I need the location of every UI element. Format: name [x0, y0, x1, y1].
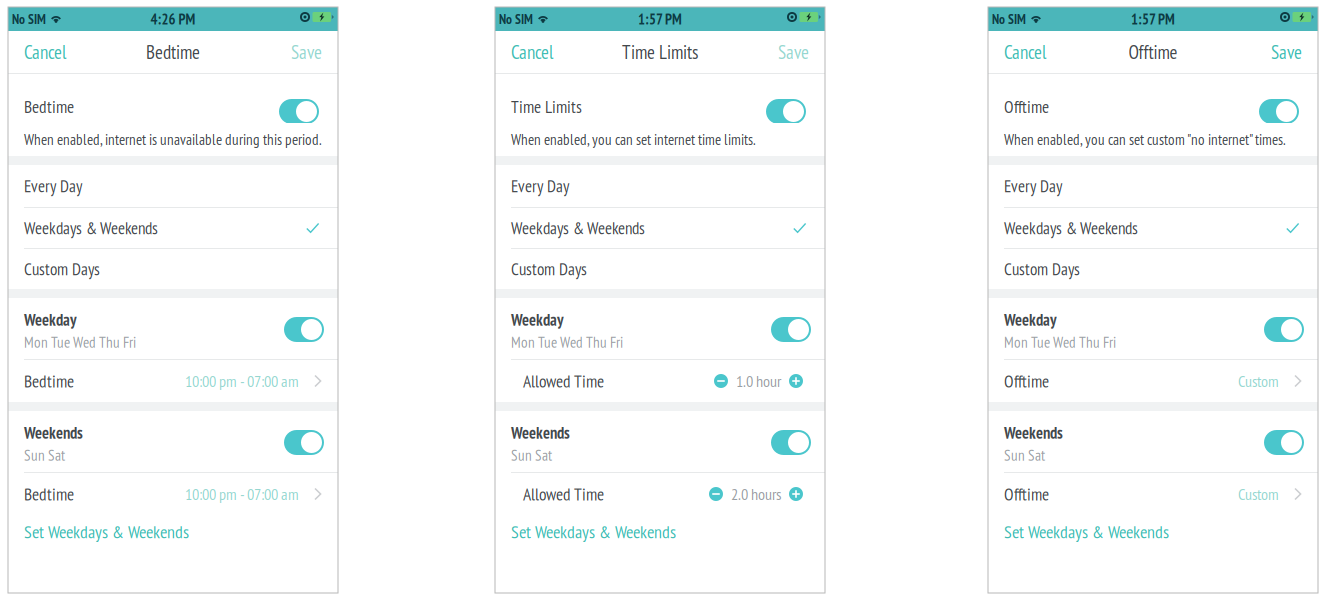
- staticText: When enabled, you can set internet time …: [511, 130, 756, 149]
- staticText: Allowed Time: [523, 370, 604, 392]
- button[interactable]: Offtime: [1259, 86, 1299, 111]
- staticText: Bedtime: [24, 370, 74, 392]
- staticText: 1.0 hour: [736, 370, 781, 391]
- staticText: 10:00 pm - 07:00 am: [185, 370, 299, 391]
- button[interactable]: Time Limits: [766, 86, 806, 111]
- staticText: Custom: [1238, 370, 1279, 391]
- staticText: No SIM: [499, 10, 533, 28]
- button[interactable]: Every Day: [988, 165, 1318, 207]
- button[interactable]: Custom Days: [988, 249, 1318, 289]
- button[interactable]: Save: [764, 29, 825, 75]
- staticText: Bedtime: [24, 483, 74, 505]
- button[interactable]: Weekdays & Weekends: [988, 208, 1318, 248]
- staticText: Offtime: [1128, 40, 1177, 64]
- staticText: Time Limits: [622, 40, 698, 64]
- staticText: Sun Sat: [511, 445, 552, 465]
- staticText: Custom Days: [1004, 258, 1080, 280]
- staticText: Weekday: [511, 309, 564, 330]
- staticText: Bedtime: [146, 40, 200, 64]
- staticText: Sun Sat: [24, 445, 65, 465]
- staticText: Weekends: [1004, 422, 1063, 443]
- button[interactable]: Bedtime: [8, 473, 338, 515]
- staticText: Weekends: [511, 422, 570, 443]
- staticText: Weekdays & Weekends: [1004, 217, 1138, 239]
- button[interactable]: Decrease allowed time: [714, 374, 728, 388]
- staticText: No SIM: [12, 10, 46, 28]
- button[interactable]: Save: [1257, 29, 1318, 75]
- button[interactable]: Weekday: [1264, 316, 1304, 341]
- staticText: 2.0 hours: [731, 483, 781, 504]
- button[interactable]: Custom Days: [495, 249, 825, 289]
- button[interactable]: Save: [277, 29, 338, 75]
- staticText: Every Day: [24, 175, 82, 197]
- staticText: Custom: [1238, 483, 1279, 504]
- staticText: Custom Days: [24, 258, 100, 280]
- staticText: Time Limits: [511, 95, 582, 118]
- staticText: 1:57 PM: [638, 9, 682, 28]
- staticText: Weekdays & Weekends: [511, 217, 645, 239]
- button[interactable]: Decrease allowed time: [709, 487, 723, 501]
- staticText: Cancel: [1004, 40, 1046, 64]
- staticText: Cancel: [24, 40, 66, 64]
- button[interactable]: Bedtime: [8, 360, 338, 402]
- staticText: 4:26 PM: [150, 9, 195, 28]
- button[interactable]: Every Day: [8, 165, 338, 207]
- staticText: Weekday: [24, 309, 77, 330]
- staticText: Allowed Time: [523, 483, 604, 505]
- button[interactable]: Set Weekdays & Weekends: [495, 515, 825, 554]
- button[interactable]: Every Day: [495, 165, 825, 207]
- button[interactable]: Increase allowed time: [789, 487, 803, 501]
- staticText: Offtime: [1004, 483, 1049, 505]
- staticText: Cancel: [511, 40, 553, 64]
- button[interactable]: Weekdays & Weekends: [495, 208, 825, 248]
- staticText: Mon Tue Wed Thu Fri: [511, 332, 623, 352]
- button[interactable]: Weekends: [284, 429, 324, 454]
- button[interactable]: Weekday: [284, 316, 324, 341]
- button[interactable]: Cancel: [495, 29, 567, 75]
- button[interactable]: Cancel: [8, 29, 80, 75]
- staticText: Every Day: [1004, 175, 1062, 197]
- staticText: Set Weekdays & Weekends: [24, 520, 189, 543]
- staticText: Save: [1271, 40, 1302, 64]
- staticText: Save: [291, 40, 322, 64]
- button[interactable]: Cancel: [988, 29, 1060, 75]
- staticText: Offtime: [1004, 370, 1049, 392]
- button[interactable]: Bedtime: [279, 86, 319, 111]
- staticText: Mon Tue Wed Thu Fri: [24, 332, 136, 352]
- staticText: Every Day: [511, 175, 569, 197]
- button[interactable]: Weekends: [1264, 429, 1304, 454]
- button[interactable]: Offtime: [988, 473, 1318, 515]
- staticText: When enabled, internet is unavailable du…: [24, 130, 322, 149]
- staticText: When enabled, you can set custom "no int…: [1004, 130, 1286, 149]
- button[interactable]: Weekdays & Weekends: [8, 208, 338, 248]
- staticText: 1:57 PM: [1131, 9, 1175, 28]
- button[interactable]: Weekends: [771, 429, 811, 454]
- staticText: Mon Tue Wed Thu Fri: [1004, 332, 1116, 352]
- staticText: Sun Sat: [1004, 445, 1045, 465]
- staticText: Custom Days: [511, 258, 587, 280]
- staticText: 10:00 pm - 07:00 am: [185, 483, 299, 504]
- button[interactable]: Offtime: [988, 360, 1318, 402]
- staticText: Set Weekdays & Weekends: [511, 520, 676, 543]
- staticText: Weekdays & Weekends: [24, 217, 158, 239]
- button[interactable]: Set Weekdays & Weekends: [988, 515, 1318, 554]
- staticText: Weekday: [1004, 309, 1057, 330]
- staticText: Bedtime: [24, 95, 74, 118]
- staticText: Set Weekdays & Weekends: [1004, 520, 1169, 543]
- button[interactable]: Custom Days: [8, 249, 338, 289]
- staticText: No SIM: [992, 10, 1026, 28]
- button[interactable]: Increase allowed time: [789, 374, 803, 388]
- staticText: Weekends: [24, 422, 83, 443]
- staticText: Save: [778, 40, 809, 64]
- button[interactable]: Weekday: [771, 316, 811, 341]
- staticText: Offtime: [1004, 95, 1049, 118]
- button[interactable]: Set Weekdays & Weekends: [8, 515, 338, 554]
